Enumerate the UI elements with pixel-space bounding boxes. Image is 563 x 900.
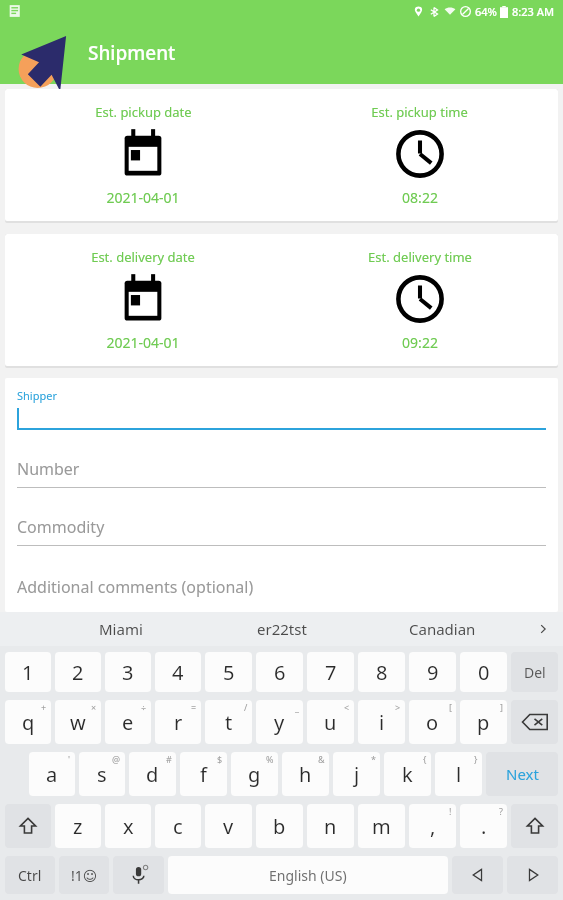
staticText: 2 <box>72 659 84 686</box>
button[interactable]: u <box>307 700 354 744</box>
button[interactable]: Additional comments (optional) <box>17 576 546 598</box>
button[interactable]: b <box>256 804 303 848</box>
staticText: 6 <box>274 659 286 686</box>
button[interactable]: Commodity <box>17 516 546 546</box>
staticText: 9 <box>427 659 439 686</box>
button[interactable]: 6 <box>256 652 303 692</box>
staticText: 7 <box>325 659 337 686</box>
staticText: l <box>456 761 462 788</box>
button[interactable]: More suggestions <box>523 612 563 646</box>
staticText: p <box>477 709 490 736</box>
button[interactable]: Canadian <box>362 612 523 646</box>
staticText: Miami <box>99 619 143 639</box>
staticText: Ctrl <box>18 866 42 885</box>
staticText: } <box>474 753 478 765</box>
button[interactable]: h <box>282 752 329 796</box>
button[interactable]: Move right <box>507 856 558 894</box>
button[interactable]: Shipper <box>17 388 546 430</box>
staticText: Est. pickup time <box>371 103 468 121</box>
button[interactable]: Number <box>17 458 546 488</box>
button[interactable]: d <box>129 752 176 796</box>
button[interactable]: Miami <box>40 612 201 646</box>
staticText: i <box>379 709 385 736</box>
staticText: { <box>423 753 427 765</box>
other: Clock <box>393 127 447 181</box>
staticText: er22tst <box>257 619 307 639</box>
staticText: b <box>273 813 286 840</box>
button[interactable]: Del <box>511 652 558 692</box>
staticText: x <box>123 813 134 840</box>
button[interactable]: f <box>180 752 227 796</box>
button[interactable]: Shift <box>511 804 558 848</box>
staticText: English (US) <box>269 866 347 885</box>
staticText: Est. delivery time <box>368 248 472 266</box>
button[interactable]: z <box>55 804 101 848</box>
button[interactable]: !1☺ <box>59 856 109 894</box>
button[interactable]: s <box>79 752 125 796</box>
staticText: = <box>191 701 197 713</box>
button[interactable]: Backspace <box>511 700 558 744</box>
staticText: Number <box>17 458 80 480</box>
button[interactable]: er22tst <box>201 612 362 646</box>
button[interactable]: k <box>384 752 431 796</box>
staticText: Commodity <box>17 516 105 538</box>
button[interactable]: 0 <box>460 652 507 692</box>
button[interactable]: m <box>358 804 405 848</box>
staticText: 64% <box>475 4 497 19</box>
button[interactable]: 1 <box>5 652 51 692</box>
button[interactable]: Est. pickup date <box>5 101 281 209</box>
button[interactable]: e <box>105 700 151 744</box>
button[interactable]: v <box>205 804 252 848</box>
button[interactable]: g <box>231 752 278 796</box>
button[interactable]: r <box>155 700 201 744</box>
button[interactable]: , <box>409 804 456 848</box>
button[interactable]: j <box>333 752 380 796</box>
staticText: Canadian <box>409 619 476 639</box>
button[interactable]: y <box>256 700 303 744</box>
button[interactable]: 2 <box>55 652 101 692</box>
staticText: ] <box>500 701 503 713</box>
staticText: 2021-04-01 <box>106 333 180 352</box>
staticText: * <box>371 753 376 765</box>
button[interactable]: 4 <box>155 652 201 692</box>
staticText: t <box>225 709 233 736</box>
button[interactable]: Move left <box>452 856 503 894</box>
button[interactable]: l <box>435 752 482 796</box>
staticText: f <box>200 761 207 788</box>
button[interactable]: Ctrl <box>5 856 55 894</box>
button[interactable]: 7 <box>307 652 354 692</box>
button[interactable]: o <box>409 700 456 744</box>
staticText: c <box>173 813 183 840</box>
button[interactable]: 9 <box>409 652 456 692</box>
button[interactable]: a <box>29 752 75 796</box>
button[interactable]: Shift <box>5 804 51 848</box>
staticText: u <box>324 709 337 736</box>
staticText: ' <box>68 753 71 765</box>
staticText: n <box>324 813 337 840</box>
button[interactable]: p <box>460 700 507 744</box>
button[interactable]: Voice input <box>113 856 164 894</box>
staticText: q <box>22 709 35 736</box>
button[interactable]: Next <box>486 752 558 796</box>
button[interactable]: w <box>55 700 101 744</box>
button[interactable]: 3 <box>105 652 151 692</box>
button[interactable]: x <box>105 804 151 848</box>
button[interactable]: t <box>205 700 252 744</box>
button[interactable]: q <box>5 700 51 744</box>
staticText: ! <box>449 805 452 817</box>
other: Calendar <box>116 272 170 326</box>
button[interactable]: n <box>307 804 354 848</box>
button[interactable]: 5 <box>205 652 252 692</box>
button[interactable]: 8 <box>358 652 405 692</box>
button[interactable]: Est. delivery date <box>5 246 281 354</box>
button[interactable]: Est. delivery time <box>281 246 558 354</box>
button[interactable]: i <box>358 700 405 744</box>
staticText: , <box>430 813 436 840</box>
button[interactable]: English (US) <box>168 856 448 894</box>
staticText: k <box>402 761 413 788</box>
button[interactable]: c <box>155 804 201 848</box>
staticText: m <box>372 813 391 840</box>
staticText: s <box>97 761 107 788</box>
button[interactable]: . <box>460 804 507 848</box>
button[interactable]: Est. pickup time <box>281 101 558 209</box>
